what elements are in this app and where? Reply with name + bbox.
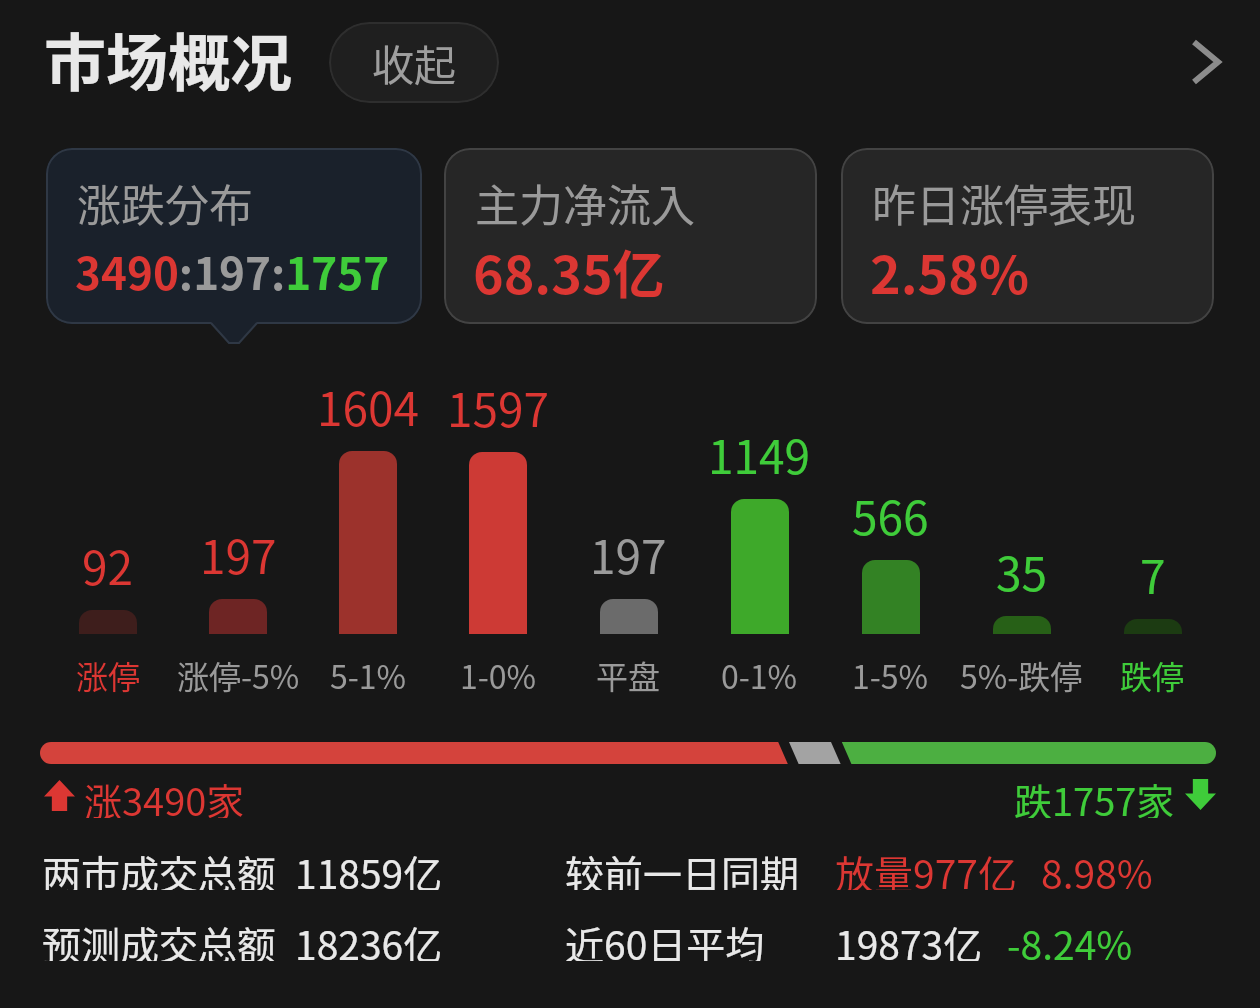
staticText: 预测成交总额 [42,915,277,961]
staticText: 2.58% [870,234,1030,309]
staticText: 35 [996,538,1048,605]
staticText: 涨跌分布 [77,171,253,235]
staticText: 两市成交总额 [42,844,277,890]
staticText: 5-1% [330,652,407,698]
staticText: 平盘 [596,652,661,698]
staticText: 0-1% [721,652,798,698]
staticText: 92 [82,532,134,599]
staticText: 197 [590,521,667,588]
staticText: 主力净流入 [475,171,695,235]
staticText: 昨日涨停表现 [872,171,1136,235]
staticText: 近60日平均 [565,915,765,961]
staticText: 较前一日同期 [565,844,800,890]
staticText: 3490:197:1757 [75,239,390,303]
staticText: 1597 [447,374,550,441]
button[interactable]: 涨跌分布 [46,148,422,324]
button[interactable]: 收起 [329,22,499,103]
staticText: 18236亿 [295,915,443,961]
button[interactable]: 涨3490家 [44,772,1216,818]
staticText: 7 [1140,541,1166,608]
staticText: -8.24% [1007,915,1133,961]
staticText: 1-5% [852,652,929,698]
button[interactable]: 主力净流入 [444,148,817,324]
staticText: 1604 [317,373,420,440]
staticText: 涨3490家 [84,772,245,818]
staticText: 涨停-5% [177,652,300,698]
staticText: 市场概况 [44,14,293,104]
staticText: 放量977亿 [835,844,1017,890]
staticText: 68.35亿 [473,234,665,309]
staticText: 收起 [372,32,457,93]
staticText: 涨停 [76,652,141,698]
button[interactable]: 昨日涨停表现 [841,148,1214,324]
staticText: 11859亿 [295,844,443,890]
staticText: 跌停 [1120,652,1185,698]
staticText: 1-0% [460,652,537,698]
button[interactable]: 展开 [1160,20,1244,104]
staticText: 19873亿 [835,915,983,961]
staticText: 197 [200,521,277,588]
staticText: 8.98% [1041,844,1153,890]
staticText: 566 [852,482,929,549]
staticText: 跌1757家 [1014,772,1175,818]
staticText: 5%-跌停 [960,652,1083,698]
staticText: 1149 [708,421,811,488]
